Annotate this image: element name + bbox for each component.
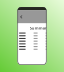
staticText: Summary [30, 25, 49, 31]
button[interactable]: Back [19, 14, 24, 20]
